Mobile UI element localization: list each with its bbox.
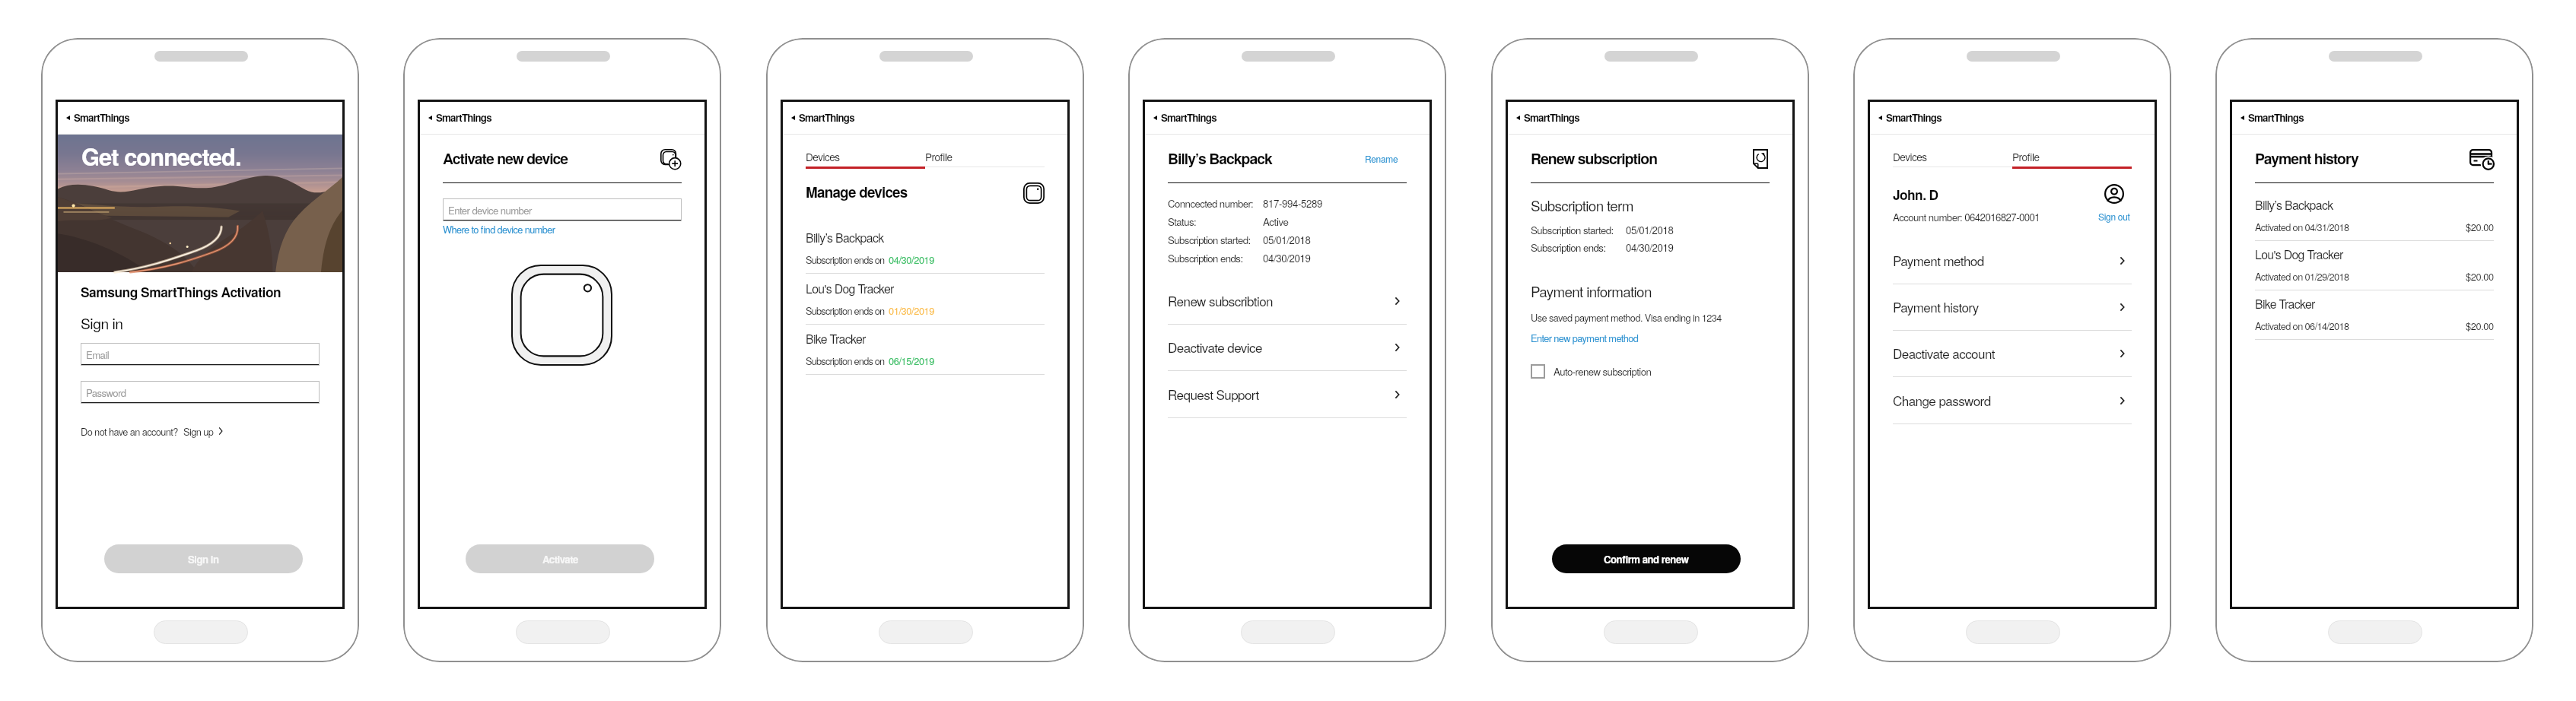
- staticText: Payment history: [2255, 147, 2358, 169]
- staticText: SmartThings: [1886, 110, 1942, 125]
- button[interactable]: Bike Tracker: [806, 324, 1045, 370]
- button[interactable]: Lou's Dog Tracker: [2255, 239, 2494, 284]
- staticText: SmartThings: [74, 110, 129, 125]
- staticText: Email: [86, 347, 109, 362]
- staticText: Lou's Dog Tracker: [806, 280, 894, 297]
- staticText: Password: [86, 385, 126, 400]
- staticText: Sign out: [2098, 210, 2130, 223]
- staticText: Subscription ends:: [1531, 240, 1606, 255]
- staticText: Conncected number:: [1168, 196, 1254, 211]
- staticText: Payment history: [1893, 297, 1979, 316]
- button[interactable]: Auto-renew subscription: [1531, 364, 1652, 379]
- staticText: Bike Tracker: [806, 330, 866, 347]
- button[interactable]: Request Support: [1168, 378, 1407, 411]
- button[interactable]: Back to SmartThings: [2240, 110, 2304, 125]
- button[interactable]: Payment method: [1893, 244, 2132, 278]
- button[interactable]: Enter new payment method: [1531, 102, 1639, 116]
- button[interactable]: Back to SmartThings: [1878, 110, 1942, 125]
- button[interactable]: Email: [81, 343, 320, 366]
- staticText: Active: [1263, 214, 1289, 229]
- button[interactable]: Billy’s Backpack: [2255, 190, 2494, 234]
- staticText: Get connected.: [81, 139, 241, 173]
- button[interactable]: Deactivate account: [1893, 337, 2132, 370]
- button[interactable]: Back to SmartThings: [1516, 110, 1579, 125]
- button[interactable]: Enter device number: [443, 198, 682, 221]
- staticText: Auto-renew subscription: [1554, 364, 1652, 379]
- staticText: Renew subscription: [1531, 147, 1658, 169]
- staticText: Activated on 04/31/2018: [2255, 220, 2349, 233]
- button[interactable]: Payment history: [1893, 290, 2132, 324]
- button[interactable]: Back to SmartThings: [66, 110, 129, 125]
- staticText: Billy’s Backpack: [1168, 147, 1272, 169]
- button[interactable]: Device: [1023, 182, 1045, 204]
- button[interactable]: Renew subscribtion: [1168, 284, 1407, 318]
- staticText: Payment method: [1893, 251, 1984, 269]
- staticText: Subscription started:: [1168, 233, 1251, 247]
- staticText: Lou's Dog Tracker: [2255, 246, 2343, 263]
- button[interactable]: Sign out: [2098, 184, 2130, 223]
- staticText: Confirm and renew: [1604, 552, 1689, 566]
- staticText: Subscription started:: [1531, 223, 1614, 237]
- staticText: Bike Tracker: [2255, 295, 2315, 312]
- staticText: Enter new payment method: [1531, 331, 1639, 344]
- button[interactable]: Password: [81, 381, 320, 404]
- staticText: Subscription ends on: [806, 252, 885, 266]
- button[interactable]: Confirm and renew: [1552, 544, 1741, 573]
- staticText: Sign in: [188, 552, 219, 566]
- staticText: Do not have an account?: [81, 424, 178, 438]
- button[interactable]: Rename: [1365, 152, 1398, 165]
- staticText: SmartThings: [2248, 110, 2304, 125]
- staticText: Subscription ends:: [1168, 251, 1243, 265]
- staticText: 04/30/2019: [1263, 251, 1311, 265]
- button[interactable]: Deactivate device: [1168, 331, 1407, 364]
- staticText: Sign up: [183, 424, 214, 438]
- staticText: Activated on 01/29/2018: [2255, 269, 2349, 283]
- button[interactable]: Bike Tracker: [2255, 289, 2494, 333]
- button[interactable]: Sign in: [104, 544, 303, 573]
- staticText: 05/01/2018: [1263, 233, 1311, 247]
- staticText: Subscription term: [1531, 195, 1633, 215]
- staticText: John. D: [1893, 185, 1938, 204]
- button[interactable]: Change password: [1893, 384, 2132, 417]
- staticText: Billy’s Backpack: [806, 229, 884, 246]
- staticText: SmartThings: [799, 110, 854, 125]
- staticText: Payment information: [1531, 281, 1652, 301]
- staticText: 04/30/2019: [889, 252, 935, 266]
- button[interactable]: Profile: [925, 146, 1045, 169]
- staticText: Account number: 0642016827-0001: [1893, 210, 2040, 224]
- button[interactable]: Activate: [466, 544, 654, 573]
- staticText: SmartThings: [436, 110, 491, 125]
- staticText: Profile: [925, 149, 952, 163]
- staticText: Devices: [806, 149, 840, 163]
- staticText: Rename: [1365, 152, 1398, 165]
- staticText: Devices: [1893, 149, 1927, 163]
- button[interactable]: Devices: [1893, 146, 2012, 169]
- button[interactable]: Sign up: [183, 422, 223, 440]
- button[interactable]: Back to SmartThings: [791, 110, 854, 125]
- staticText: $20.00: [2466, 319, 2494, 332]
- staticText: Activate new device: [443, 147, 568, 169]
- staticText: Status:: [1168, 214, 1197, 229]
- button[interactable]: Payment history: [2469, 149, 2494, 170]
- staticText: 817-994-5289: [1263, 196, 1322, 211]
- staticText: Billy’s Backpack: [2255, 196, 2333, 214]
- button[interactable]: Billy’s Backpack: [806, 223, 1045, 268]
- staticText: Deactivate device: [1168, 338, 1262, 356]
- staticText: Sign in: [81, 312, 123, 334]
- button[interactable]: Profile: [2012, 146, 2132, 169]
- staticText: Change password: [1893, 391, 1991, 409]
- button[interactable]: Lou's Dog Tracker: [806, 274, 1045, 319]
- staticText: Request Support: [1168, 385, 1259, 403]
- staticText: Use saved payment method. Visa ending in…: [1531, 310, 1722, 324]
- staticText: Deactivate account: [1893, 344, 1995, 362]
- button[interactable]: Add device: [660, 149, 682, 169]
- button[interactable]: Renew: [1753, 149, 1768, 169]
- staticText: 04/30/2019: [1626, 240, 1674, 255]
- button[interactable]: Devices: [806, 146, 925, 169]
- button[interactable]: Back to SmartThings: [428, 110, 491, 125]
- staticText: SmartThings: [1161, 110, 1216, 125]
- staticText: 06/15/2019: [889, 354, 935, 367]
- button[interactable]: Where to find device number: [443, 102, 555, 116]
- staticText: Enter device number: [448, 203, 532, 217]
- button[interactable]: Back to SmartThings: [1153, 110, 1216, 125]
